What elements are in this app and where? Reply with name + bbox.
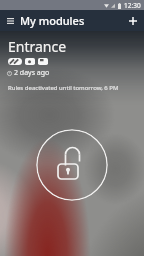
staticText: 12:30 [124,1,141,10]
staticText: 2 days ago [14,68,50,78]
button[interactable]: Add module [122,10,144,31]
staticText: My modules [20,13,85,28]
button[interactable]: Unlock entrance [36,129,108,201]
staticText: Entrance [8,37,67,56]
button[interactable]: Open navigation menu [0,10,20,31]
staticText: Rules deactivated until tomorrow, 6 PM [8,84,119,92]
